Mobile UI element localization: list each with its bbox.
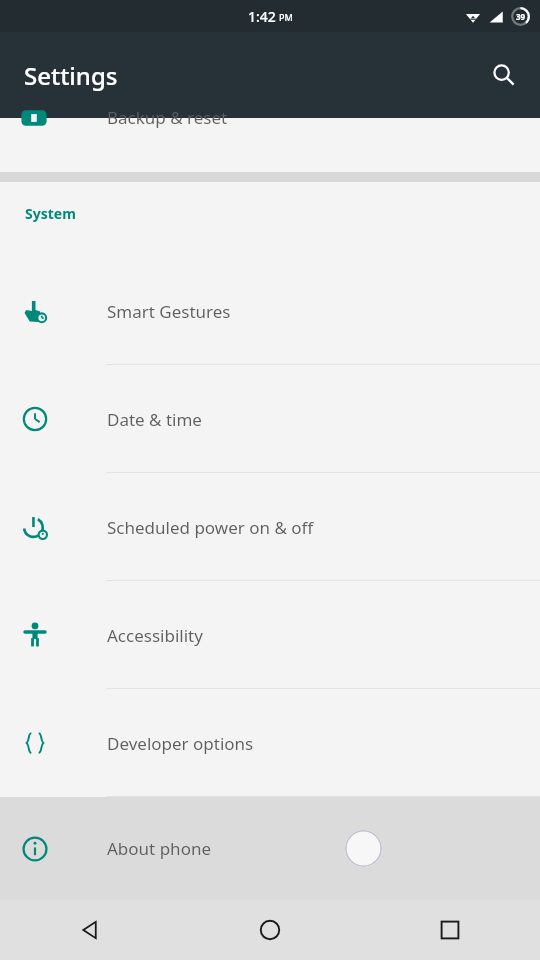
button[interactable]: Date & time <box>0 365 540 473</box>
staticText: Scheduled power on & off <box>107 516 314 539</box>
button[interactable]: About phone <box>0 797 540 900</box>
staticText: System <box>25 204 76 223</box>
button[interactable]: Back <box>0 900 180 960</box>
staticText: PM <box>279 11 293 23</box>
staticText: Accessibility <box>107 624 203 647</box>
button[interactable]: Backup & reset <box>0 118 540 154</box>
button[interactable]: Search <box>480 51 528 99</box>
button[interactable]: Developer options <box>0 689 540 797</box>
button[interactable]: Scheduled power on & off <box>0 473 540 581</box>
button[interactable]: Home <box>180 900 360 960</box>
staticText: Smart Gestures <box>107 300 231 323</box>
button[interactable]: Accessibility <box>0 581 540 689</box>
staticText: About phone <box>107 837 212 860</box>
staticText: Developer options <box>107 732 254 755</box>
button[interactable]: Smart Gestures <box>0 257 540 365</box>
staticText: Settings <box>24 59 118 92</box>
staticText: 1:42 <box>248 7 276 26</box>
staticText: Date & time <box>107 408 202 431</box>
button[interactable]: Recents <box>360 900 540 960</box>
staticText: Backup & reset <box>107 106 228 129</box>
staticText: 39 <box>516 11 526 22</box>
